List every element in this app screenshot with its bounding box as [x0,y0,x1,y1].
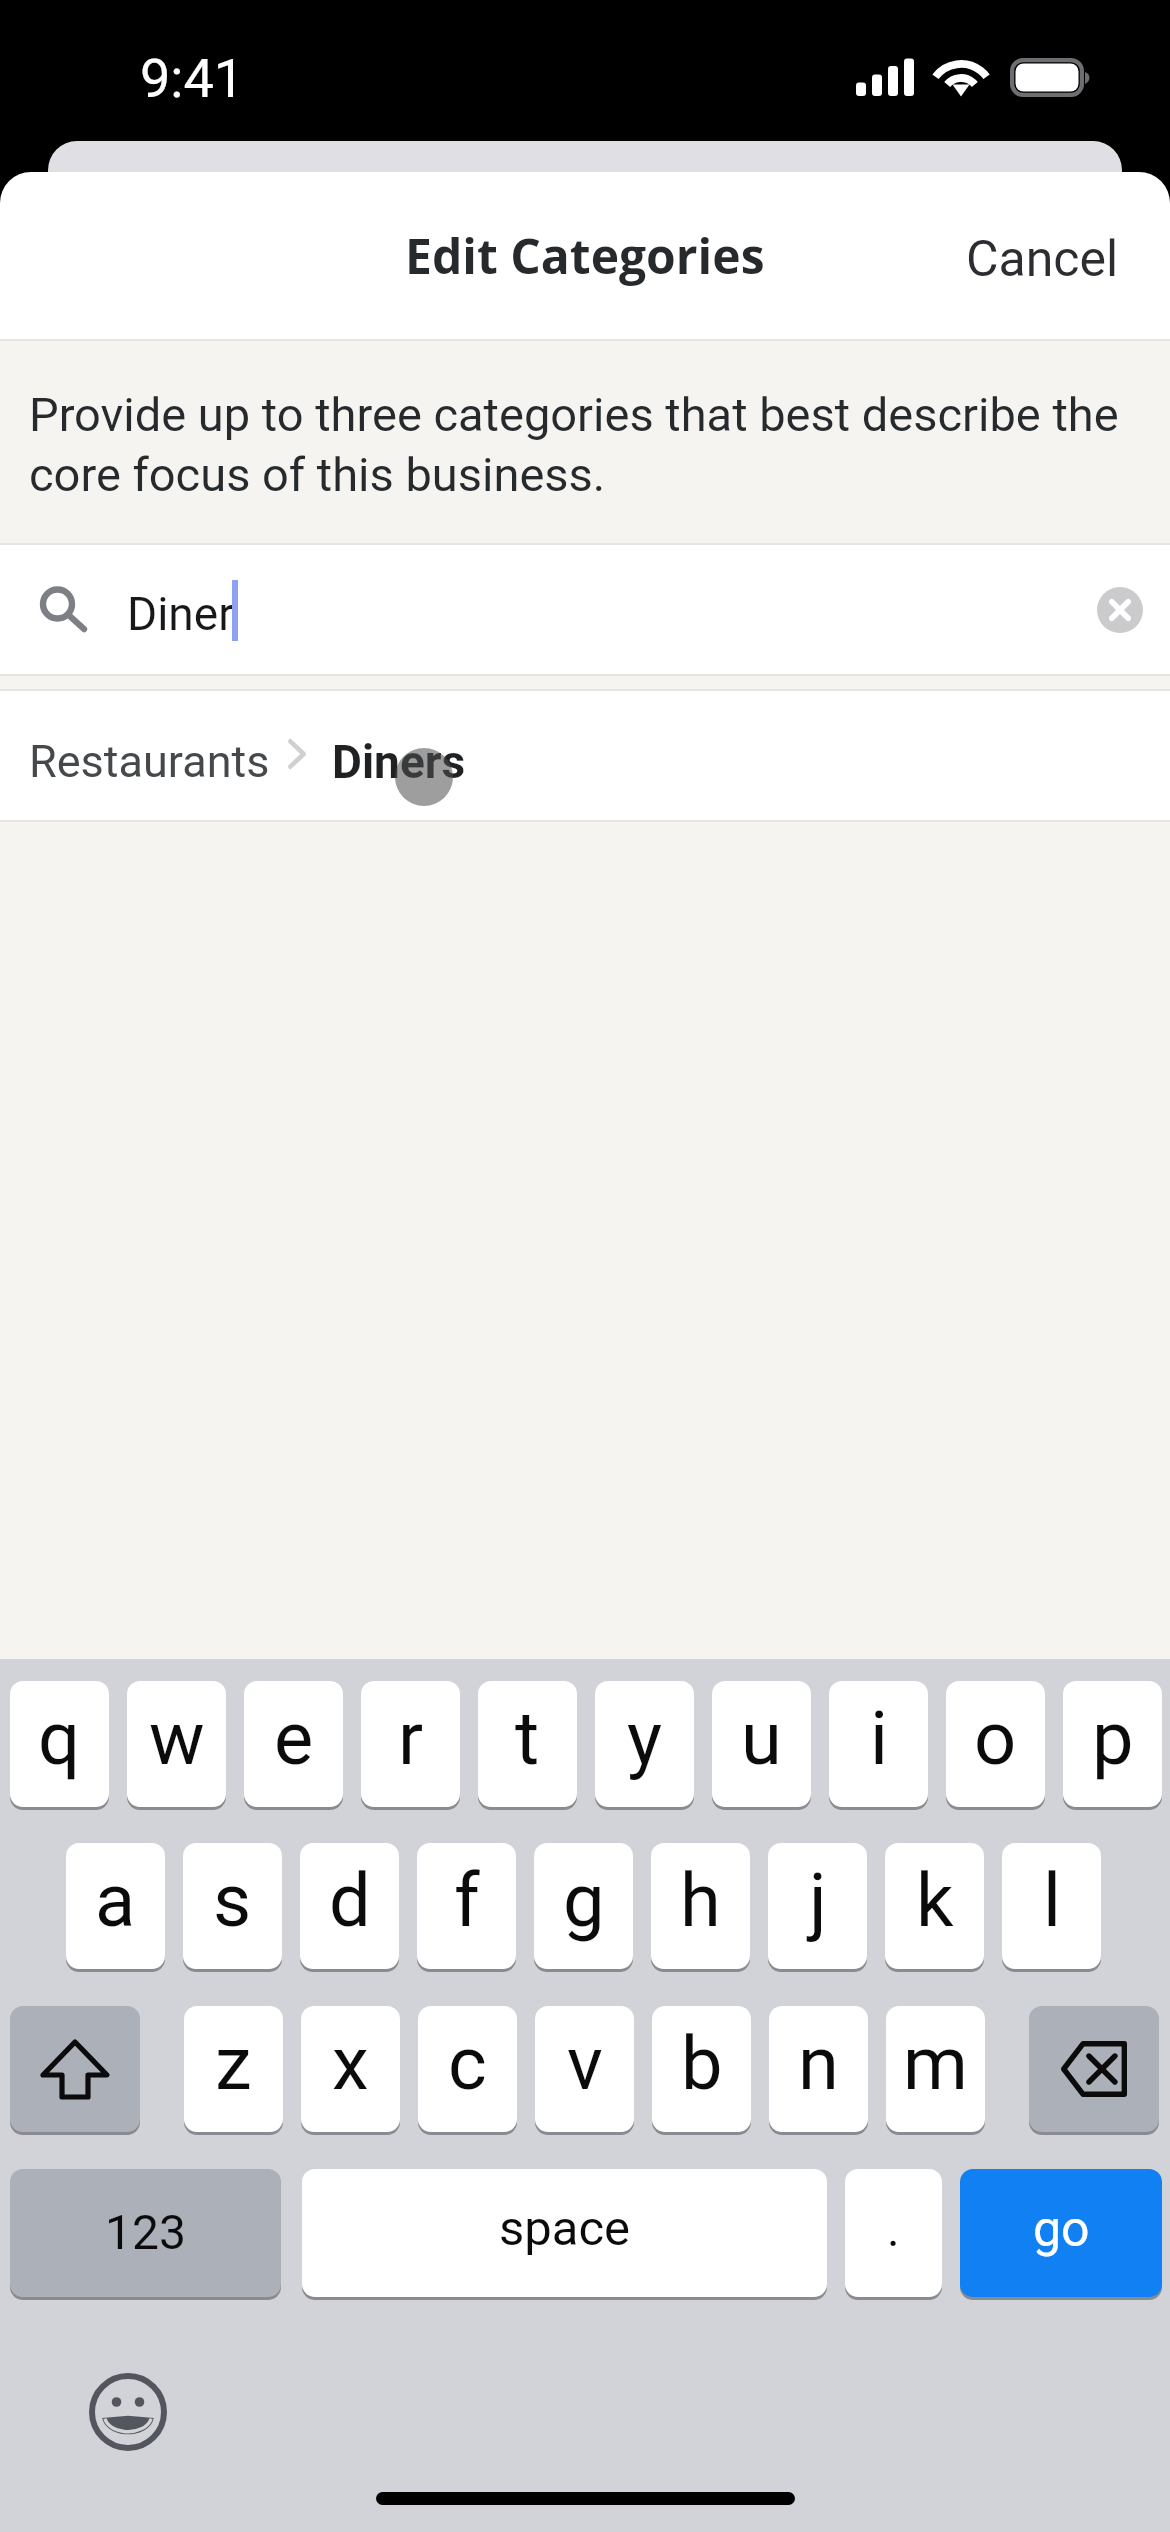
staticText: e [274,1695,314,1782]
button[interactable]: q [10,1681,109,1807]
staticText: go [1033,2200,1090,2259]
button[interactable]: . [845,2169,942,2297]
button[interactable]: e [244,1681,343,1807]
button[interactable]: u [712,1681,811,1807]
button[interactable]: Cancel [915,204,1170,315]
button[interactable]: y [595,1681,694,1807]
staticText: Diners [332,735,466,789]
staticText: b [681,2020,723,2107]
button[interactable]: go [960,2169,1162,2297]
staticText: d [329,1857,371,1944]
staticText: x [332,2020,369,2107]
button[interactable] [10,2006,140,2132]
button[interactable]: Emoji keyboard [87,2371,169,2453]
button[interactable]: 123 [10,2169,281,2297]
button[interactable]: d [300,1843,399,1969]
button[interactable]: t [478,1681,577,1807]
staticText: space [499,2200,631,2257]
staticText: n [798,2020,839,2107]
staticText: Edit Categories [405,223,765,288]
staticText: j [809,1857,827,1944]
staticText: m [903,2020,968,2107]
staticText: f [454,1857,480,1944]
button[interactable]: a [66,1843,165,1969]
staticText: Diner [127,587,234,641]
button[interactable]: space [302,2169,827,2297]
staticText: a [95,1857,136,1944]
button[interactable]: i [829,1681,928,1807]
staticText: h [680,1857,721,1944]
button[interactable]: h [651,1843,750,1969]
staticText: l [1043,1857,1061,1944]
button[interactable]: Clear search [1070,560,1170,660]
staticText: o [974,1695,1017,1782]
button[interactable]: p [1063,1681,1162,1807]
staticText: Provide up to three categories that best… [29,387,1130,503]
button[interactable]: f [417,1843,516,1969]
staticText: k [916,1857,954,1944]
button[interactable]: Diner [0,545,1170,674]
staticText: r [398,1695,424,1782]
staticText: g [563,1857,605,1944]
staticText: s [213,1857,252,1944]
button[interactable]: v [535,2006,634,2132]
staticText: p [1092,1695,1134,1782]
button[interactable]: z [184,2006,283,2132]
staticText: Cancel [966,230,1119,289]
staticText: . [887,2201,900,2257]
staticText: Restaurants [29,735,270,788]
button[interactable]: w [127,1681,226,1807]
staticText: u [741,1695,782,1782]
button[interactable]: c [418,2006,517,2132]
staticText: 123 [105,2204,186,2260]
staticText: c [448,2020,487,2107]
staticText: 9:41 [140,47,245,110]
staticText: v [567,2020,603,2107]
button[interactable]: o [946,1681,1045,1807]
button[interactable] [1029,2006,1159,2132]
button[interactable]: n [769,2006,868,2132]
button[interactable]: x [301,2006,400,2132]
other: Backspace [1029,2006,1159,2135]
staticText: w [149,1695,205,1782]
other: Shift [10,2006,140,2135]
button[interactable]: Restaurants [0,691,1170,820]
staticText: q [38,1695,81,1782]
button[interactable]: g [534,1843,633,1969]
button[interactable]: r [361,1681,460,1807]
staticText: y [627,1695,663,1782]
button[interactable]: m [886,2006,985,2132]
button[interactable]: s [183,1843,282,1969]
staticText: t [515,1695,540,1782]
staticText: i [870,1695,888,1782]
staticText: z [215,2020,252,2107]
button[interactable]: j [768,1843,867,1969]
button[interactable]: k [885,1843,984,1969]
button[interactable]: b [652,2006,751,2132]
button[interactable]: l [1002,1843,1101,1969]
